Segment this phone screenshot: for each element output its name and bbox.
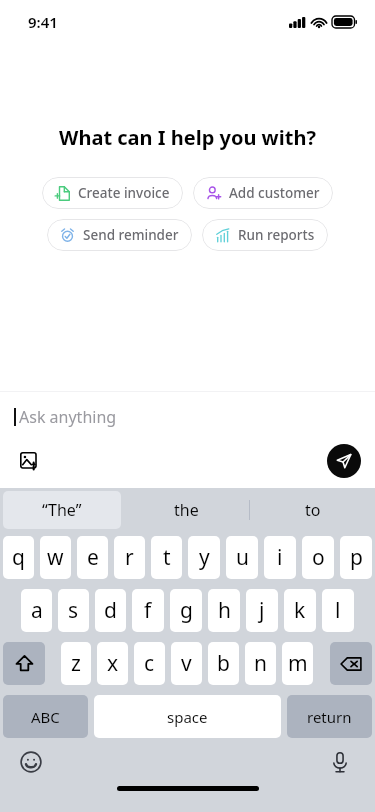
staticText: y (199, 543, 210, 572)
staticText: Send reminder (83, 226, 179, 244)
staticText: v (181, 649, 192, 678)
button[interactable]: Attach image (12, 444, 46, 478)
staticText: t (163, 543, 171, 572)
staticText: z (71, 649, 81, 678)
button[interactable]: o (302, 536, 334, 579)
button[interactable]: c (134, 642, 165, 685)
staticText: j (259, 596, 265, 625)
button[interactable]: return (287, 695, 372, 738)
staticText: k (294, 596, 306, 625)
button[interactable]: t (151, 536, 182, 579)
button[interactable]: l (322, 589, 354, 632)
button[interactable]: s (58, 589, 89, 632)
staticText: h (218, 596, 231, 625)
button[interactable]: q (3, 536, 34, 579)
button[interactable]: p (340, 536, 372, 579)
button[interactable]: j (246, 589, 278, 632)
button[interactable]: to (250, 491, 375, 529)
button[interactable]: Run reports (202, 219, 328, 251)
button[interactable]: i (264, 536, 296, 579)
staticText: r (125, 543, 134, 572)
staticText: q (12, 543, 25, 572)
button[interactable]: f (132, 589, 164, 632)
button[interactable]: Send reminder (47, 219, 192, 251)
button[interactable]: v (171, 642, 202, 685)
staticText: c (144, 649, 155, 678)
staticText: Run reports (238, 226, 315, 244)
staticText: b (217, 649, 230, 678)
staticText: i (277, 543, 283, 572)
staticText: 9:41 (28, 12, 58, 32)
staticText: return (307, 707, 352, 727)
staticText: “The” (42, 499, 82, 521)
button[interactable]: Dictate (323, 745, 357, 779)
button[interactable]: z (61, 642, 91, 685)
button[interactable]: Emoji (14, 745, 48, 779)
button[interactable]: w (40, 536, 71, 579)
staticText: w (47, 543, 64, 572)
button[interactable]: Backspace (330, 642, 372, 685)
button[interactable]: g (170, 589, 202, 632)
button[interactable]: n (245, 642, 276, 685)
staticText: the (174, 499, 199, 521)
staticText: p (350, 543, 363, 572)
staticText: d (104, 596, 117, 625)
staticText: e (87, 543, 99, 572)
staticText: g (180, 596, 193, 625)
button[interactable]: the (124, 491, 249, 529)
staticText: l (335, 596, 341, 625)
staticText: a (31, 596, 43, 625)
button[interactable]: Add customer (193, 177, 333, 209)
button[interactable]: Send (327, 444, 361, 478)
button[interactable]: d (95, 589, 126, 632)
staticText: s (68, 596, 79, 625)
staticText: Add customer (229, 184, 320, 202)
staticText: n (254, 649, 267, 678)
staticText: x (107, 649, 119, 678)
button[interactable]: space (94, 695, 281, 738)
button[interactable]: Create invoice (42, 177, 183, 209)
staticText: f (144, 596, 152, 625)
button[interactable]: “The” (3, 491, 121, 529)
button[interactable]: h (208, 589, 240, 632)
staticText: Ask anything (19, 406, 117, 428)
staticText: ABC (31, 707, 60, 727)
button[interactable]: e (77, 536, 108, 579)
button[interactable]: Shift (3, 642, 45, 685)
staticText: to (305, 499, 321, 521)
button[interactable]: k (284, 589, 316, 632)
button[interactable]: x (97, 642, 128, 685)
button[interactable]: u (226, 536, 258, 579)
button[interactable]: y (188, 536, 220, 579)
button[interactable]: a (21, 589, 52, 632)
staticText: What can I help you with? (59, 124, 316, 151)
button[interactable]: r (114, 536, 145, 579)
staticText: m (288, 649, 308, 678)
button[interactable]: ABC (3, 695, 88, 738)
staticText: u (236, 543, 249, 572)
staticText: space (167, 707, 208, 727)
button[interactable]: m (282, 642, 313, 685)
staticText: o (312, 543, 325, 572)
button[interactable]: b (208, 642, 239, 685)
staticText: Create invoice (78, 184, 170, 202)
